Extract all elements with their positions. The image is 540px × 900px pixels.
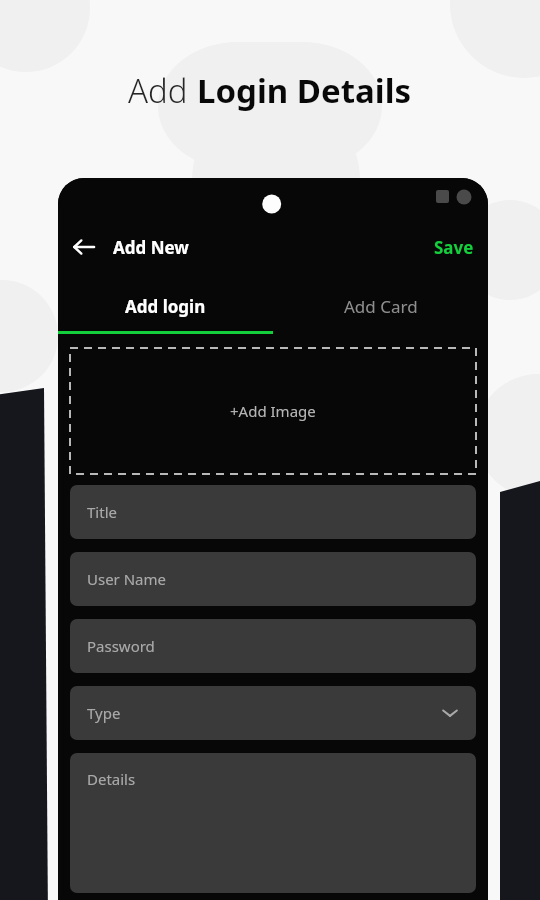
staticText: Add: [128, 68, 197, 113]
staticText: Add Card: [344, 295, 418, 318]
button[interactable]: Details: [70, 753, 476, 893]
button[interactable]: Type: [70, 686, 476, 740]
staticText: Type: [87, 703, 121, 723]
button[interactable]: User Name: [70, 552, 476, 606]
staticText: Add New: [113, 236, 189, 259]
staticText: Details: [87, 769, 136, 789]
staticText: User Name: [87, 569, 167, 589]
button[interactable]: Title: [70, 485, 476, 539]
button[interactable]: Back: [64, 227, 104, 267]
button[interactable]: Add login: [58, 270, 273, 342]
button[interactable]: Password: [70, 619, 476, 673]
button[interactable]: Add Card: [273, 270, 488, 342]
staticText: Login Details: [197, 68, 412, 113]
staticText: Title: [87, 502, 117, 522]
staticText: +Add Image: [230, 401, 316, 421]
button[interactable]: Save: [420, 228, 488, 267]
staticText: Add login: [125, 295, 206, 318]
staticText: Password: [87, 636, 155, 656]
button[interactable]: +Add Image: [70, 348, 476, 474]
staticText: Save: [434, 236, 474, 259]
